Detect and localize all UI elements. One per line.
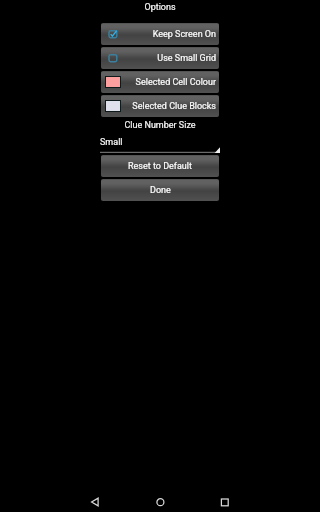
staticText: Clue Number Size [0, 120, 320, 131]
button[interactable]: Selected Clue Blocks [101, 95, 219, 117]
staticText: Use Small Grid [157, 53, 216, 64]
button[interactable]: Done [101, 179, 219, 201]
button[interactable]: Back [79, 484, 111, 512]
button[interactable]: Clue Number Size: Small [100, 135, 220, 154]
button[interactable]: Selected Cell Colour [101, 71, 219, 93]
staticText: Selected Clue Blocks [132, 101, 216, 112]
button[interactable]: Recent apps [208, 484, 240, 512]
staticText: Done [150, 185, 171, 196]
staticText: Options [0, 2, 320, 13]
staticText: Reset to Default [128, 161, 192, 172]
button[interactable]: Reset to Default [101, 155, 219, 177]
staticText: Keep Screen On [152, 29, 216, 40]
staticText: Small [100, 137, 123, 148]
button[interactable]: Keep Screen On [101, 23, 219, 45]
button[interactable]: Home [144, 484, 176, 512]
staticText: Selected Cell Colour [135, 77, 216, 88]
button[interactable]: Use Small Grid [101, 47, 219, 69]
